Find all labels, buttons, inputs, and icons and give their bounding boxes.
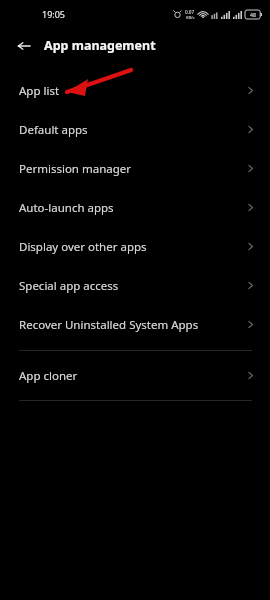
staticText: Display over other apps — [19, 239, 246, 255]
button[interactable]: Special app access — [0, 266, 270, 305]
staticText: App management — [44, 37, 156, 54]
staticText: 19:05 — [42, 8, 66, 20]
staticText: 0.07 — [185, 9, 195, 15]
button[interactable]: App cloner — [0, 356, 270, 395]
staticText: App cloner — [19, 368, 246, 384]
button[interactable]: Display over other apps — [0, 227, 270, 266]
button[interactable]: App list — [0, 71, 270, 110]
button[interactable]: Back — [10, 32, 37, 59]
staticText: Permission manager — [19, 161, 246, 177]
staticText: Recover Uninstalled System Apps — [19, 317, 246, 333]
staticText: 48 — [250, 11, 256, 18]
button[interactable]: Auto-launch apps — [0, 188, 270, 227]
button[interactable]: Default apps — [0, 110, 270, 149]
staticText: App list — [19, 83, 246, 99]
staticText: Special app access — [19, 278, 246, 294]
button[interactable]: Recover Uninstalled System Apps — [0, 305, 270, 344]
staticText: Default apps — [19, 122, 246, 138]
staticText: Auto-launch apps — [19, 200, 246, 216]
staticText: KB/s — [186, 15, 195, 20]
button[interactable]: Permission manager — [0, 149, 270, 188]
